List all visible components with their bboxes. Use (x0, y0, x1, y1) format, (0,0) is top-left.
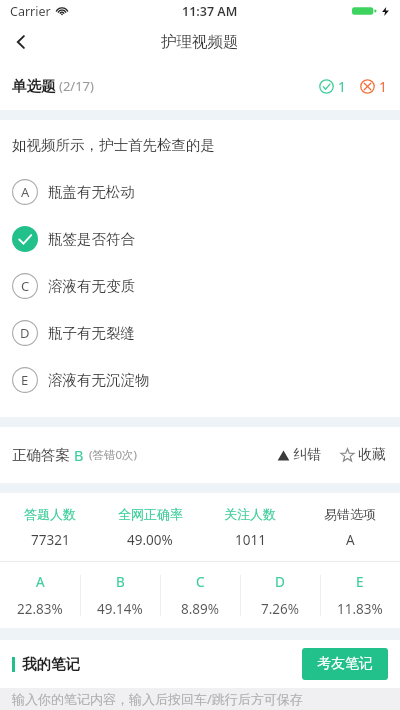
staticText: D (275, 573, 285, 591)
staticText: 关注人数 (224, 506, 276, 522)
staticText: 溶液有无变质 (48, 277, 135, 295)
staticText: 1 (379, 77, 388, 96)
staticText: 1011 (235, 531, 266, 549)
staticText: 22.83% (17, 600, 63, 618)
staticText: 11.83% (337, 600, 383, 618)
staticText: 49.00% (127, 531, 173, 549)
staticText: E (21, 371, 29, 389)
staticText: A (21, 183, 30, 201)
button[interactable]: A (0, 168, 400, 215)
staticText: 收藏 (358, 446, 386, 464)
staticText: B (74, 445, 84, 465)
staticText: 护理视频题 (161, 32, 239, 52)
staticText: C (21, 277, 30, 295)
staticText: 77321 (31, 531, 70, 549)
staticText: D (20, 324, 30, 342)
staticText: C (196, 573, 205, 591)
button[interactable]: 1 (360, 77, 388, 96)
staticText: A (346, 531, 355, 549)
button[interactable]: 考友笔记 (302, 648, 388, 680)
staticText: 如视频所示，护士首先检查的是 (12, 136, 215, 154)
staticText: 11:37 AM (182, 3, 238, 20)
button[interactable]: 收藏 (338, 446, 388, 464)
button[interactable]: D (0, 309, 400, 356)
staticText: 瓶签是否符合 (48, 230, 135, 248)
staticText: (2/17) (59, 77, 94, 95)
button[interactable]: 纠错 (275, 446, 323, 464)
staticText: (答错0次) (89, 447, 137, 463)
button[interactable]: E (0, 356, 400, 403)
staticText: 全网正确率 (118, 506, 183, 522)
staticText: 49.14% (97, 600, 143, 618)
staticText: 7.26% (261, 600, 300, 618)
staticText: 考友笔记 (317, 655, 373, 673)
button[interactable]: Back (0, 22, 42, 62)
staticText: E (356, 573, 364, 591)
staticText: B (116, 573, 125, 591)
staticText: A (36, 573, 45, 591)
staticText: 纠错 (293, 446, 321, 464)
button[interactable]: 瓶签是否符合 (0, 215, 400, 262)
staticText: 易错选项 (324, 506, 376, 522)
button[interactable]: C (0, 262, 400, 309)
staticText: 瓶子有无裂缝 (48, 324, 135, 342)
staticText: 正确答案 (12, 446, 70, 464)
staticText: 单选题 (12, 77, 56, 95)
staticText: 输入你的笔记内容，输入后按回车/跳行后方可保存 (12, 690, 303, 708)
button[interactable]: 输入你的笔记内容，输入后按回车/跳行后方可保存 (0, 688, 400, 710)
staticText: 我的笔记 (22, 655, 80, 673)
staticText: 瓶盖有无松动 (48, 183, 135, 201)
button[interactable]: 1 (319, 77, 347, 96)
staticText: 溶液有无沉淀物 (48, 371, 150, 389)
staticText: 答题人数 (24, 506, 76, 522)
staticText: 1 (338, 77, 347, 96)
staticText: 8.89% (181, 600, 220, 618)
staticText: Carrier (10, 3, 51, 20)
